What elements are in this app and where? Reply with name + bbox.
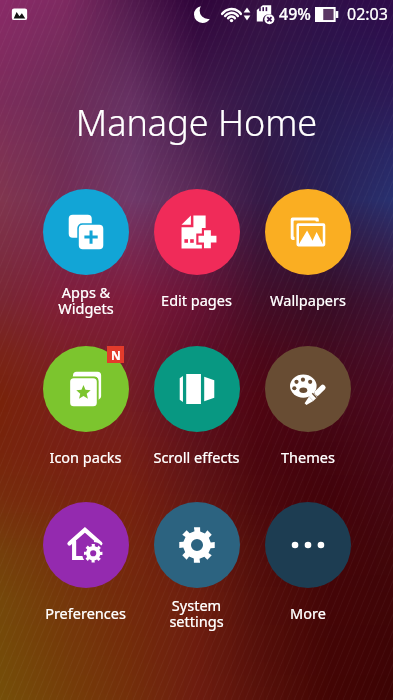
staticText: Wallpapers bbox=[270, 290, 346, 310]
staticText: System settings bbox=[169, 595, 224, 632]
button[interactable] bbox=[43, 189, 129, 275]
staticText: More bbox=[290, 603, 326, 623]
button[interactable] bbox=[154, 346, 240, 432]
staticText: Icon packs bbox=[49, 447, 122, 467]
staticText: Edit pages bbox=[161, 290, 232, 310]
staticText: Scroll effects bbox=[153, 447, 240, 467]
staticText: Themes bbox=[281, 447, 335, 467]
button[interactable] bbox=[154, 502, 240, 588]
staticText: 02:03 bbox=[347, 3, 388, 25]
button[interactable] bbox=[265, 189, 351, 275]
button[interactable] bbox=[154, 189, 240, 275]
other: Gallery notification bbox=[11, 6, 28, 23]
staticText: Preferences bbox=[45, 603, 126, 623]
button[interactable] bbox=[265, 502, 351, 588]
staticText: Manage Home bbox=[0, 98, 393, 147]
button[interactable] bbox=[43, 502, 129, 588]
button[interactable] bbox=[43, 346, 129, 432]
button[interactable] bbox=[265, 346, 351, 432]
staticText: 49% bbox=[279, 3, 311, 25]
staticText: N bbox=[111, 347, 121, 363]
staticText: Apps & Widgets bbox=[58, 282, 114, 319]
